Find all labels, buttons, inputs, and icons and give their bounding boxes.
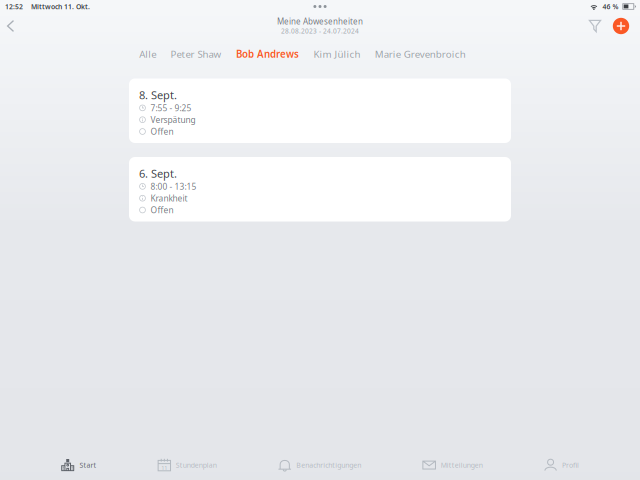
- staticText: Kim Jülich: [313, 47, 360, 60]
- staticText: 46 %: [598, 2, 622, 11]
- staticText: Profil: [562, 460, 579, 470]
- button[interactable]: Peter Shaw: [163, 42, 229, 66]
- staticText: Verspätung: [150, 114, 195, 125]
- button[interactable]: Alle: [132, 42, 163, 66]
- staticText: Bob Andrews: [236, 47, 299, 60]
- staticText: Krankheit: [150, 193, 187, 204]
- staticText: 7:55 - 9:25: [150, 102, 191, 113]
- staticText: Meine Abwesenheiten: [277, 16, 363, 27]
- staticText: 12:52: [5, 2, 23, 11]
- staticText: Offen: [150, 204, 173, 216]
- staticText: Start: [79, 460, 96, 470]
- button[interactable]: Kim Jülich: [306, 42, 368, 66]
- staticText: 11: [161, 464, 167, 471]
- staticText: Alle: [139, 47, 156, 60]
- button[interactable]: Marie Grevenbroich: [368, 42, 473, 66]
- button[interactable]: Benachrichtigungen: [278, 451, 361, 479]
- staticText: Benachrichtigungen: [296, 460, 361, 470]
- button[interactable]: Start: [61, 451, 96, 479]
- button[interactable]: Bob Andrews: [229, 42, 306, 66]
- staticText: Mittwoch 11. Okt.: [23, 2, 90, 11]
- staticText: Peter Shaw: [171, 47, 222, 60]
- button[interactable]: Add: [608, 13, 634, 39]
- button[interactable]: Profil: [544, 451, 579, 479]
- staticText: 8:00 - 13:15: [150, 181, 196, 192]
- staticText: Mitteilungen: [441, 460, 483, 470]
- button[interactable]: 8. Sept.: [129, 78, 511, 143]
- button[interactable]: Mitteilungen: [422, 451, 483, 479]
- staticText: 8. Sept.: [139, 88, 177, 102]
- staticText: Marie Grevenbroich: [375, 47, 466, 60]
- staticText: Stundenplan: [176, 460, 217, 470]
- staticText: 6. Sept.: [139, 166, 177, 181]
- button[interactable]: Back: [0, 13, 20, 39]
- staticText: 28.08.2023 - 24.07.2024: [281, 27, 359, 35]
- button[interactable]: Filter: [582, 13, 608, 39]
- staticText: Offen: [150, 126, 173, 137]
- button[interactable]: 6. Sept.: [129, 157, 511, 221]
- button[interactable]: 11: [157, 451, 217, 479]
